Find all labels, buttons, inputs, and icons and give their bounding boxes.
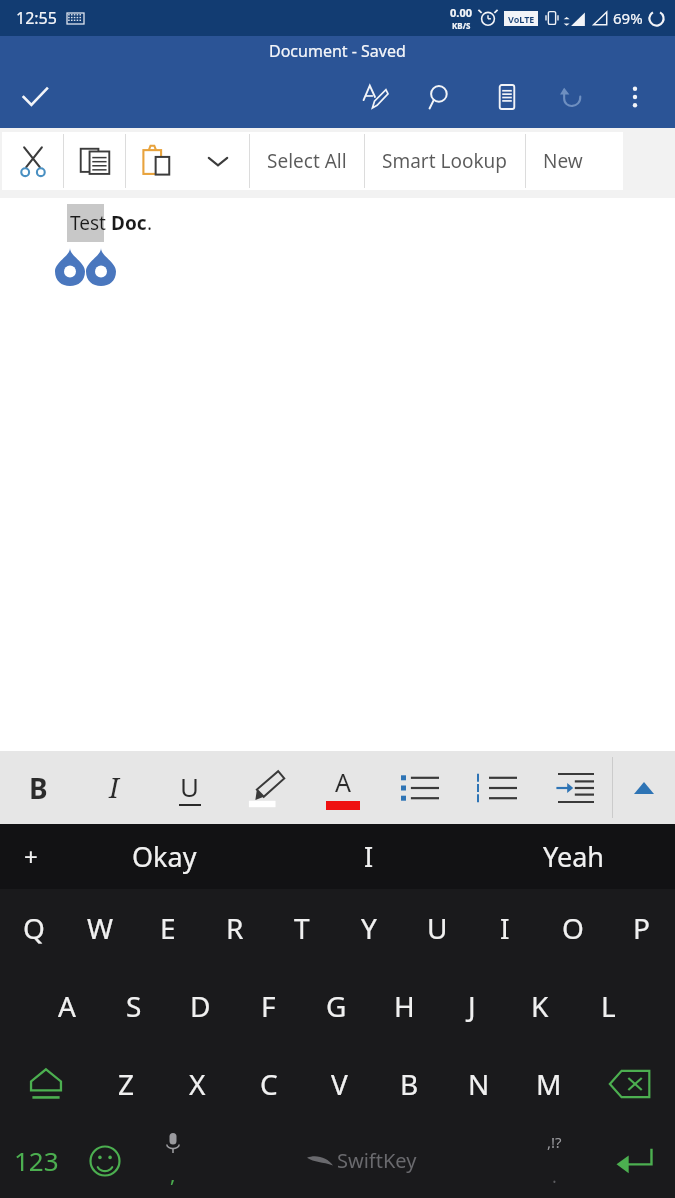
button[interactable]: Emoji [72, 1123, 138, 1198]
button[interactable]: Okay [62, 824, 267, 889]
button[interactable]: X [162, 1045, 233, 1123]
button[interactable]: E [134, 889, 201, 967]
button[interactable]: Q [0, 889, 67, 967]
staticText: I [109, 769, 119, 806]
button[interactable]: Done [0, 66, 70, 128]
button[interactable]: 123 [0, 1123, 72, 1198]
staticText: New Comment [543, 148, 606, 174]
staticText: Test [70, 210, 111, 236]
button[interactable]: I [267, 824, 471, 889]
staticText: + [24, 840, 38, 873]
button[interactable]: Increase indent [535, 751, 612, 824]
button[interactable]: Add to dictionary [0, 824, 62, 889]
staticText: U [427, 909, 448, 947]
button[interactable]: Voice input and comma [138, 1123, 208, 1198]
button[interactable]: K [506, 967, 574, 1045]
staticText: S [126, 987, 142, 1025]
button[interactable]: Z [91, 1045, 162, 1123]
staticText: R [226, 909, 244, 947]
button[interactable]: Paste [126, 132, 187, 190]
staticText: N [468, 1065, 490, 1103]
button[interactable]: Enter [593, 1123, 675, 1198]
button[interactable]: Undo [551, 75, 595, 119]
button[interactable]: B [374, 1045, 444, 1123]
button[interactable]: Font color [304, 751, 381, 824]
button[interactable]: T [268, 889, 335, 967]
staticText: Document - Saved [269, 40, 406, 62]
button[interactable]: New Comment [526, 132, 623, 190]
staticText: 0.00 [450, 5, 472, 20]
staticText: T [294, 909, 310, 947]
staticText: 123 [14, 1143, 59, 1178]
button[interactable]: M [514, 1045, 584, 1123]
button[interactable]: V [304, 1045, 374, 1123]
button[interactable]: W [67, 889, 134, 967]
staticText: A [335, 765, 351, 799]
button[interactable]: U [403, 889, 471, 967]
staticText: I [364, 838, 374, 875]
staticText: , [170, 1161, 176, 1188]
staticText: G [326, 987, 347, 1025]
staticText: . [147, 210, 153, 236]
button[interactable]: Italic [76, 751, 152, 824]
staticText: L [601, 987, 616, 1025]
button[interactable]: D [167, 967, 234, 1045]
button[interactable]: Bold [0, 751, 76, 824]
button[interactable]: Smart Lookup [365, 132, 525, 190]
button[interactable]: J [438, 967, 506, 1045]
button[interactable]: Yeah [471, 824, 675, 889]
staticText: O [562, 909, 584, 947]
button[interactable]: Collapse [613, 751, 675, 824]
button[interactable]: Select All [250, 132, 364, 190]
button[interactable]: Period [515, 1123, 593, 1198]
button[interactable]: Search [419, 75, 463, 119]
staticText: Smart Lookup [382, 148, 508, 174]
button[interactable]: Backspace [584, 1045, 675, 1123]
button[interactable]: F [234, 967, 302, 1045]
button[interactable]: I [471, 889, 539, 967]
button[interactable]: More [187, 132, 249, 190]
staticText: 12:55 [16, 7, 57, 29]
button[interactable]: Space [208, 1123, 515, 1198]
staticText: M [536, 1065, 562, 1103]
staticText: KB/S [452, 20, 471, 31]
button[interactable]: Mobile view [485, 75, 529, 119]
staticText: U [180, 769, 200, 804]
button[interactable]: A [33, 967, 100, 1045]
button[interactable]: Underline [152, 751, 228, 824]
staticText: V [331, 1065, 348, 1103]
button[interactable]: Draw [353, 75, 397, 119]
button[interactable]: N [444, 1045, 514, 1123]
staticText: F [261, 987, 276, 1025]
button[interactable]: Copy [64, 132, 125, 190]
staticText: J [468, 987, 476, 1025]
button[interactable]: Cut [2, 132, 63, 190]
button[interactable]: Highlight [228, 751, 304, 824]
staticText: D [190, 987, 211, 1025]
button[interactable]: Y [335, 889, 403, 967]
button[interactable]: C [233, 1045, 304, 1123]
staticText: Yeah [543, 838, 604, 875]
staticText: VoLTE [508, 13, 535, 25]
staticText: Doc [111, 210, 147, 236]
staticText: Y [361, 909, 377, 947]
button[interactable]: L [574, 967, 642, 1045]
staticText: K [531, 987, 549, 1025]
button[interactable]: R [201, 889, 268, 967]
button[interactable]: S [100, 967, 167, 1045]
button[interactable]: Shift [0, 1045, 91, 1123]
staticText: C [260, 1065, 278, 1103]
staticText: Z [118, 1065, 135, 1103]
staticText: Select All [267, 148, 347, 174]
staticText: P [633, 909, 650, 947]
staticText: Okay [132, 838, 197, 875]
button[interactable]: O [539, 889, 607, 967]
staticText: B [29, 769, 48, 807]
button[interactable]: G [302, 967, 370, 1045]
button[interactable]: More options [613, 75, 657, 119]
button[interactable]: Bulleted list [381, 751, 458, 824]
button[interactable]: H [370, 967, 438, 1045]
staticText: . [552, 1164, 557, 1189]
button[interactable]: Numbered list [458, 751, 535, 824]
button[interactable]: P [607, 889, 675, 967]
